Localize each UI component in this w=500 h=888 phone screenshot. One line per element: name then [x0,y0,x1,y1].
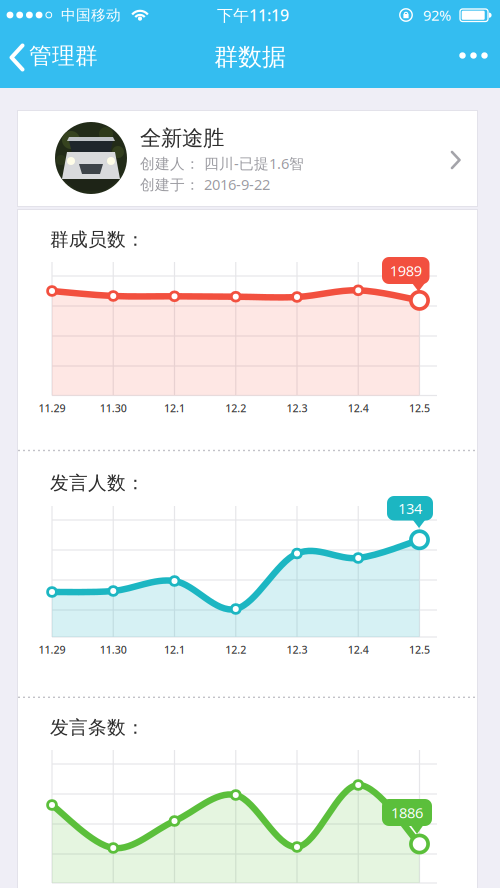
staticText: 群数据 [214,42,286,72]
staticText: 12.4 [348,642,369,657]
staticText: 134 [398,498,422,518]
staticText: 12.2 [225,401,246,415]
staticText: 1989 [390,261,422,280]
staticText: 11.29 [38,642,65,657]
button[interactable]: 管理群 [0,40,105,74]
staticText: 12.3 [286,401,307,415]
staticText: 12.1 [164,401,185,415]
staticText: 12.1 [164,642,185,657]
button[interactable]: 全新途胜 [18,111,477,206]
staticText: 12.5 [409,401,430,415]
staticText: 管理群 [29,42,98,70]
staticText: 1886 [391,803,423,822]
staticText: 群成员数： [50,228,145,251]
staticText: 12.2 [225,642,246,657]
staticText: 12.3 [286,642,307,657]
staticText: 全新途胜 [140,125,224,151]
staticText: 创建人： 四川-已提1.6智 [140,153,304,173]
button[interactable]: 更多 [457,38,500,72]
staticText: 12.5 [409,642,430,657]
staticText: 中国移动 [61,6,121,24]
staticText: 12.4 [348,401,369,415]
staticText: 创建于： 2016-9-22 [140,174,270,194]
staticText: 发言人数： [50,471,145,494]
staticText: 11.29 [38,401,65,415]
staticText: 92% [423,5,451,25]
staticText: 11.30 [100,401,127,415]
staticText: 下午11:19 [217,4,289,26]
staticText: 11.30 [100,642,127,657]
staticText: 发言条数： [50,716,145,739]
